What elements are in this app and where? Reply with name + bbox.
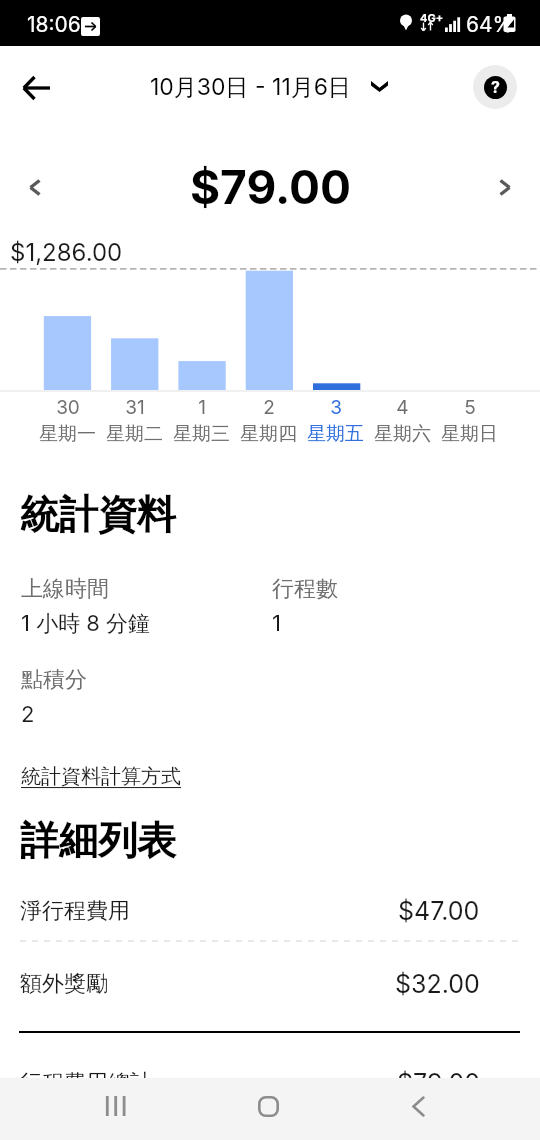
button[interactable]: 統計資料計算方式 (21, 764, 181, 789)
staticText: 上線時間 (21, 575, 109, 603)
staticText: $79.00 (397, 1068, 480, 1098)
staticText: 3 (330, 396, 342, 419)
staticText: ? (491, 77, 500, 96)
staticText: 星期三 (173, 422, 230, 446)
staticText: 31 (125, 396, 145, 419)
button[interactable]: 4 (369, 396, 436, 446)
button[interactable]: Home (240, 1078, 296, 1134)
button[interactable]: Back (12, 63, 61, 112)
staticText: 4 (396, 396, 409, 419)
staticText: 2 (263, 396, 275, 419)
button[interactable]: 額外獎勵 (20, 958, 480, 1010)
button[interactable]: 1 (168, 396, 235, 446)
button[interactable]: Back (390, 1078, 446, 1134)
button[interactable]: 30 (34, 396, 101, 446)
staticText: 30 (56, 396, 80, 419)
staticText: $47.00 (398, 896, 480, 926)
staticText: 行程費用總計 (20, 1069, 152, 1097)
button[interactable]: 行程費用總計 (20, 1057, 480, 1109)
staticText: 星期一 (39, 422, 96, 446)
staticText: $1,286.00 (10, 238, 123, 267)
staticText: $32.00 (395, 969, 480, 999)
button[interactable]: Recent apps (88, 1078, 144, 1134)
staticText: 行程數 (272, 575, 338, 603)
staticText: 1 小時 8 分鐘 (21, 610, 151, 638)
staticText: 統計資料 (20, 490, 176, 539)
button[interactable]: 淨行程費用 (20, 885, 480, 937)
staticText: 4G+ (420, 11, 444, 24)
staticText: 18:06 (27, 12, 81, 37)
staticText: 2 (21, 701, 35, 728)
staticText: 星期五 (307, 422, 364, 446)
staticText: 星期六 (374, 422, 431, 446)
button[interactable]: Previous week (14, 166, 56, 208)
staticText: 1 (198, 396, 206, 419)
staticText: 額外獎勵 (20, 970, 108, 998)
staticText: 64% (466, 12, 514, 37)
staticText: 1 (272, 610, 281, 637)
staticText: $79.00 (190, 159, 351, 215)
staticText: 5 (464, 396, 476, 419)
button[interactable]: Help (473, 65, 517, 109)
button[interactable]: 10月30日 - 11月6日 (150, 73, 388, 102)
staticText: 10月30日 - 11月6日 (150, 73, 352, 102)
button[interactable]: 31 (101, 396, 168, 446)
button[interactable]: 2 (235, 396, 302, 446)
button[interactable]: 3 (302, 396, 369, 446)
staticText: 統計資料計算方式 (21, 764, 181, 789)
button[interactable]: 5 (436, 396, 503, 446)
staticText: 星期四 (240, 422, 297, 446)
staticText: 點積分 (21, 666, 87, 694)
staticText: 星期二 (106, 422, 163, 446)
staticText: 詳細列表 (20, 816, 176, 865)
button[interactable]: Next week (484, 166, 526, 208)
staticText: 淨行程費用 (20, 897, 130, 925)
staticText: 星期日 (441, 422, 498, 446)
